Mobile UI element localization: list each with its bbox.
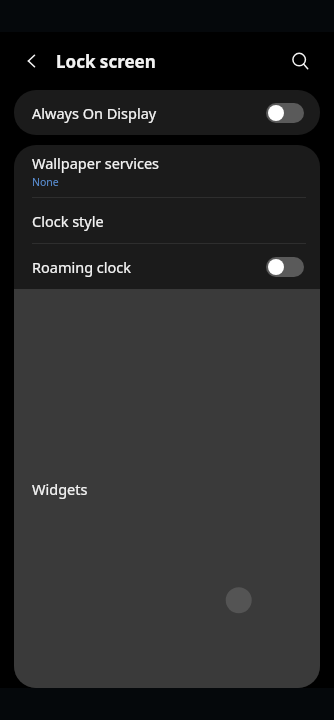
button[interactable]: Back	[14, 43, 50, 79]
button[interactable]: Off	[266, 257, 304, 277]
button[interactable]: Widgets	[14, 289, 320, 688]
staticText: Roaming clock	[32, 257, 132, 277]
staticText: None	[32, 175, 59, 189]
button[interactable]: Always On Display	[14, 90, 320, 135]
staticText: Clock style	[32, 211, 104, 231]
button[interactable]: Wallpaper services	[14, 145, 320, 197]
button[interactable]: Search	[280, 41, 320, 81]
staticText: Lock screen	[56, 50, 156, 73]
staticText: Wallpaper services	[32, 153, 160, 173]
button[interactable]: Clock style	[14, 198, 320, 243]
button[interactable]: Off	[266, 103, 304, 123]
staticText: Always On Display	[32, 103, 157, 123]
button[interactable]: Roaming clock	[14, 244, 320, 289]
staticText: Widgets	[32, 479, 88, 499]
